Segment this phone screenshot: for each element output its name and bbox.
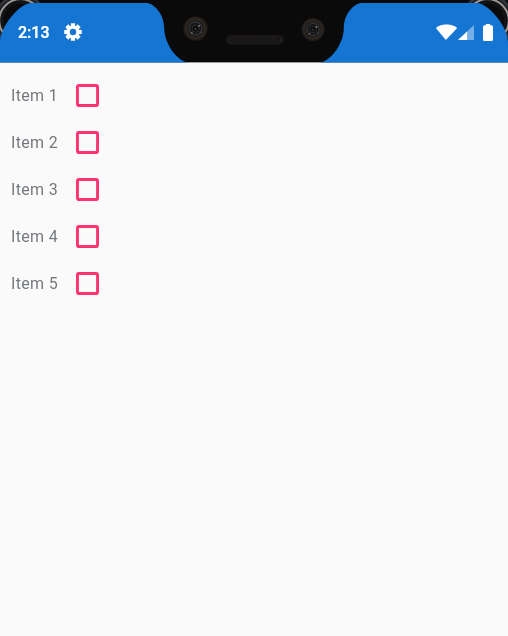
button[interactable]: Item 4 [0, 213, 508, 260]
button[interactable]: Item 3 [0, 166, 508, 213]
button[interactable]: Item 1 [0, 72, 508, 119]
staticText: Item 5 [11, 274, 58, 293]
staticText: Item 3 [11, 180, 58, 199]
staticText: Item 2 [11, 133, 58, 152]
staticText: 2:13 [18, 23, 50, 42]
button[interactable]: Item 5 [0, 260, 508, 307]
button[interactable]: Item 2 [0, 119, 508, 166]
staticText: Item 1 [11, 86, 58, 105]
staticText: Item 4 [11, 227, 58, 246]
button[interactable]: Settings [62, 21, 83, 42]
